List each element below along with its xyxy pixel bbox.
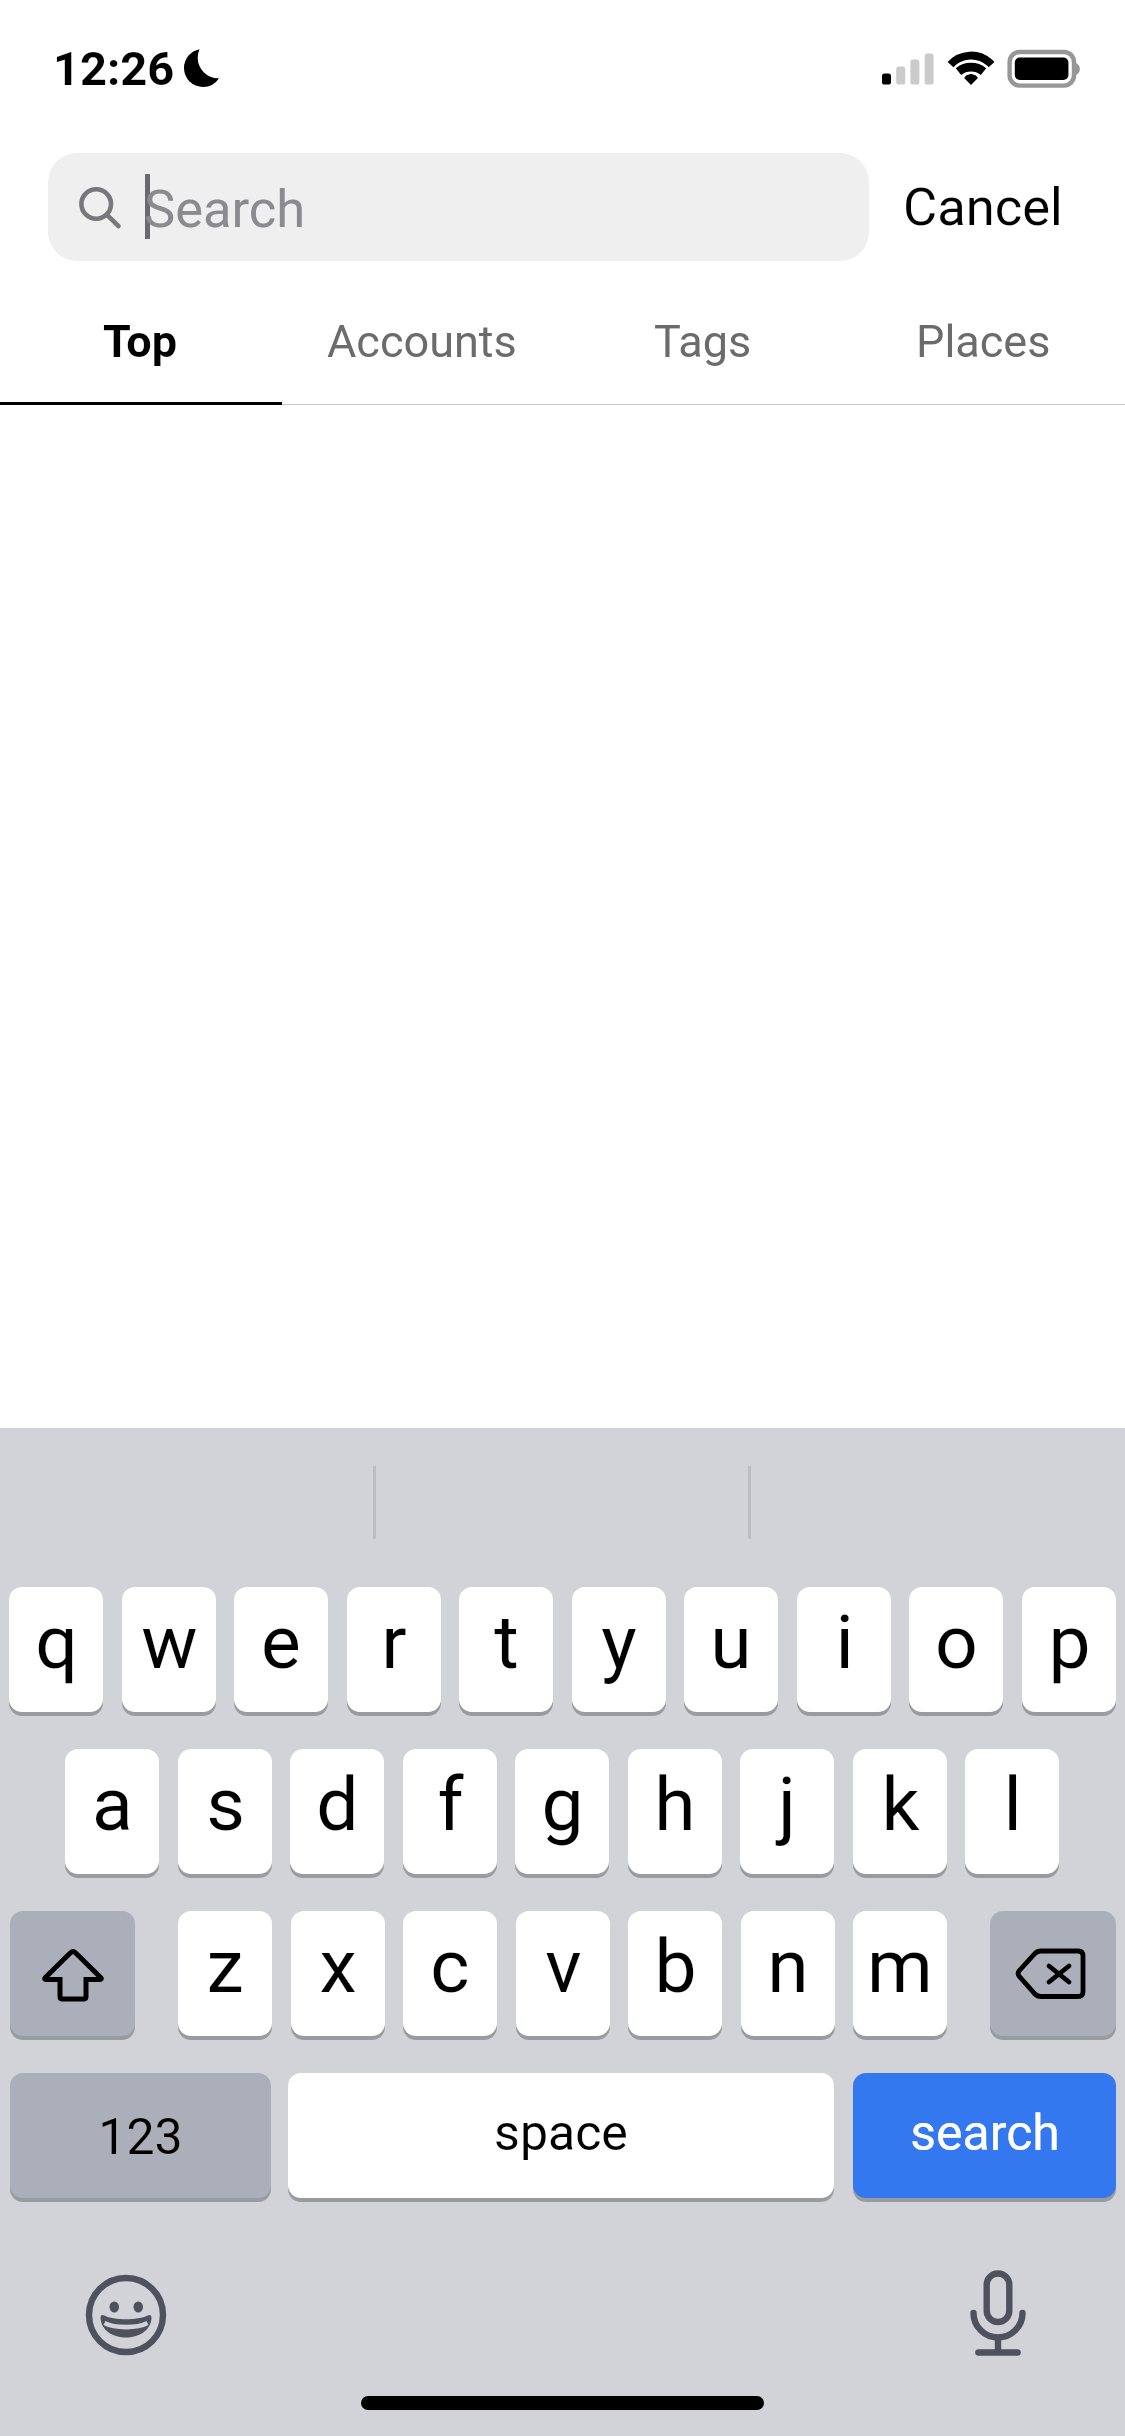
button[interactable]: l bbox=[965, 1749, 1059, 1874]
staticText: o bbox=[935, 1598, 978, 1686]
button[interactable]: n bbox=[741, 1911, 835, 2036]
staticText: Accounts bbox=[327, 315, 517, 368]
staticText: b bbox=[654, 1922, 697, 2010]
button[interactable]: Shift bbox=[10, 1911, 135, 2036]
staticText: n bbox=[767, 1922, 809, 2010]
button[interactable]: e bbox=[234, 1587, 328, 1712]
staticText: t bbox=[494, 1598, 519, 1686]
button[interactable]: z bbox=[178, 1911, 272, 2036]
staticText: p bbox=[1048, 1598, 1091, 1686]
staticText: x bbox=[319, 1922, 357, 2010]
staticText: s bbox=[206, 1760, 245, 1848]
staticText: r bbox=[381, 1598, 407, 1686]
button[interactable]: y bbox=[572, 1587, 666, 1712]
button[interactable]: Accounts bbox=[281, 280, 562, 402]
staticText: Cancel bbox=[903, 176, 1063, 238]
button[interactable]: q bbox=[9, 1587, 103, 1712]
staticText: space bbox=[494, 2104, 628, 2163]
button[interactable]: j bbox=[740, 1749, 834, 1874]
button[interactable]: m bbox=[853, 1911, 947, 2036]
staticText: l bbox=[1003, 1760, 1022, 1848]
staticText: h bbox=[654, 1760, 696, 1848]
button[interactable]: k bbox=[853, 1749, 947, 1874]
button[interactable]: Tags bbox=[562, 280, 843, 402]
staticText: d bbox=[316, 1760, 359, 1848]
staticText: 123 bbox=[98, 2108, 183, 2167]
staticText: k bbox=[881, 1760, 920, 1848]
button[interactable]: u bbox=[684, 1587, 778, 1712]
button[interactable]: v bbox=[516, 1911, 610, 2036]
button[interactable]: b bbox=[628, 1911, 722, 2036]
button[interactable]: f bbox=[403, 1749, 497, 1874]
staticText: y bbox=[601, 1598, 637, 1686]
button[interactable]: Cancel bbox=[886, 153, 1086, 261]
staticText: search bbox=[910, 2104, 1060, 2163]
staticText: v bbox=[545, 1922, 582, 2010]
button[interactable]: d bbox=[290, 1749, 384, 1874]
staticText: 12:26 bbox=[53, 41, 175, 96]
staticText: m bbox=[867, 1922, 933, 2010]
button[interactable]: g bbox=[515, 1749, 609, 1874]
staticText: Tags bbox=[654, 315, 752, 368]
staticText: f bbox=[437, 1760, 464, 1848]
button[interactable]: x bbox=[291, 1911, 385, 2036]
button[interactable]: Backspace bbox=[990, 1911, 1116, 2036]
button[interactable]: w bbox=[122, 1587, 216, 1712]
staticText: e bbox=[261, 1598, 301, 1686]
button[interactable]: Emoji keyboard bbox=[66, 2255, 186, 2375]
staticText: q bbox=[35, 1598, 78, 1686]
staticText: c bbox=[430, 1922, 470, 2010]
button[interactable]: s bbox=[178, 1749, 272, 1874]
staticText: u bbox=[710, 1598, 752, 1686]
staticText: Places bbox=[916, 315, 1051, 368]
staticText: w bbox=[141, 1598, 198, 1686]
button[interactable]: Search bbox=[48, 153, 869, 261]
button[interactable]: h bbox=[628, 1749, 722, 1874]
button[interactable]: a bbox=[65, 1749, 159, 1874]
staticText: a bbox=[92, 1760, 133, 1848]
staticText: Top bbox=[103, 315, 178, 368]
button[interactable]: Dictation bbox=[948, 2264, 1048, 2394]
button[interactable]: Places bbox=[843, 280, 1124, 402]
button[interactable]: space bbox=[288, 2073, 834, 2198]
button[interactable]: 123 bbox=[10, 2073, 271, 2198]
staticText: j bbox=[778, 1760, 796, 1848]
button[interactable]: i bbox=[797, 1587, 891, 1712]
button[interactable]: Top bbox=[0, 280, 281, 402]
staticText: g bbox=[541, 1760, 584, 1848]
staticText: i bbox=[835, 1598, 854, 1686]
button[interactable]: c bbox=[403, 1911, 497, 2036]
button[interactable]: o bbox=[909, 1587, 1003, 1712]
button[interactable]: t bbox=[459, 1587, 553, 1712]
staticText: z bbox=[206, 1922, 244, 2010]
button[interactable]: p bbox=[1022, 1587, 1116, 1712]
button[interactable]: search bbox=[853, 2073, 1116, 2198]
staticText: Search bbox=[144, 178, 306, 240]
button[interactable]: r bbox=[347, 1587, 441, 1712]
